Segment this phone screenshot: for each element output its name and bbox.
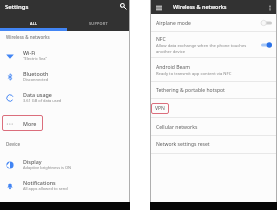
staticText: Bluetooth — [23, 70, 49, 77]
button[interactable]: More — [2, 115, 43, 131]
staticText: Device — [6, 141, 21, 147]
button[interactable]: Data usage — [0, 87, 130, 107]
staticText: All apps allowed to send — [23, 186, 68, 191]
staticText: "Electric Sea" — [23, 56, 48, 61]
staticText: More — [23, 120, 37, 127]
staticText: Settings — [5, 3, 29, 11]
staticText: another device — [156, 49, 186, 55]
staticText: NFC — [156, 36, 166, 43]
staticText: Android Beam — [156, 64, 190, 71]
staticText: Network settings reset — [156, 141, 210, 148]
button[interactable]: More options — [266, 4, 273, 11]
staticText: Sound — [23, 200, 40, 207]
button[interactable]: NFC — [150, 32, 277, 58]
button[interactable]: Display — [0, 154, 130, 174]
button[interactable]: Bluetooth — [0, 66, 130, 86]
button[interactable]: Android Beam — [150, 58, 277, 82]
button[interactable]: Airplane mode — [150, 14, 277, 32]
staticText: Allow data exchange when the phone touch… — [156, 43, 247, 49]
staticText: Display — [23, 158, 42, 165]
staticText: Ready to transmit app content via NFC — [156, 71, 232, 77]
staticText: 3.61 GB of data used — [23, 98, 62, 103]
button[interactable]: SUPPORT — [67, 18, 130, 28]
staticText: Wi-Fi — [23, 49, 36, 56]
staticText: VPN — [155, 105, 165, 112]
staticText: Adaptive brightness is ON — [23, 165, 72, 170]
staticText: Notifications — [23, 179, 56, 186]
button[interactable]: Network settings reset — [150, 135, 277, 154]
staticText: ALL — [30, 21, 38, 26]
staticText: Cellular networks — [156, 124, 198, 131]
button[interactable]: ALL — [0, 18, 67, 28]
staticText: Disconnected — [23, 77, 49, 82]
button[interactable]: Cellular networks — [150, 118, 277, 136]
staticText: Tethering & portable hotspot — [156, 87, 225, 94]
staticText: Airplane mode — [156, 20, 191, 27]
staticText: Wireless & networks — [6, 34, 50, 40]
button[interactable]: VPN — [151, 103, 169, 114]
button[interactable]: Sound — [0, 196, 130, 210]
staticText: Data usage — [23, 91, 52, 98]
button[interactable]: Notifications — [0, 175, 130, 195]
button[interactable]: Tethering & portable hotspot — [150, 81, 277, 99]
button[interactable]: Wi-Fi — [0, 45, 130, 65]
button[interactable]: Open navigation menu — [155, 4, 162, 11]
staticText: SUPPORT — [89, 21, 108, 26]
button[interactable]: Search — [119, 2, 127, 10]
staticText: Wireless & networks — [173, 3, 227, 10]
